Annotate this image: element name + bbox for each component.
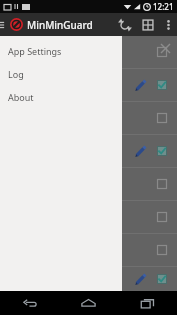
- button[interactable]: [0, 102, 177, 134]
- button[interactable]: [0, 69, 177, 101]
- button[interactable]: More options: [160, 13, 176, 36]
- button[interactable]: Home: [59, 291, 118, 315]
- button[interactable]: About: [0, 85, 122, 108]
- staticText: Log: [8, 68, 24, 80]
- button[interactable]: Close: [154, 37, 176, 59]
- button[interactable]: [0, 201, 177, 233]
- button[interactable]: [0, 36, 177, 68]
- button[interactable]: Back: [0, 291, 59, 315]
- staticText: MinMinGuard: [27, 18, 93, 32]
- button[interactable]: Log: [0, 62, 122, 85]
- button[interactable]: App Settings: [0, 39, 122, 62]
- staticText: 12:21: [153, 1, 174, 12]
- staticText: About: [8, 91, 34, 103]
- button[interactable]: Refresh: [114, 13, 136, 36]
- button[interactable]: Open navigation drawer: [0, 13, 8, 36]
- button[interactable]: Switch view: [136, 13, 160, 36]
- button[interactable]: Recent apps: [118, 291, 177, 315]
- button[interactable]: [0, 135, 177, 167]
- button[interactable]: [0, 168, 177, 200]
- button[interactable]: [0, 267, 177, 291]
- staticText: App Settings: [8, 45, 62, 57]
- button[interactable]: [0, 234, 177, 266]
